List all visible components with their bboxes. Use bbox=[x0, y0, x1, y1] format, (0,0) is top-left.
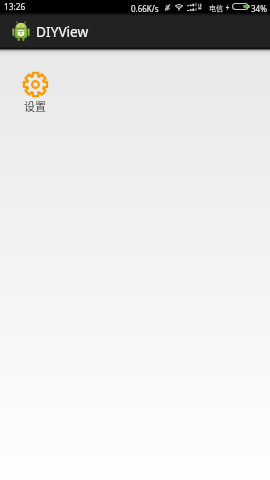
other: App icon bbox=[12, 21, 30, 41]
staticText: 13:26 bbox=[4, 1, 26, 12]
staticText: DIYView bbox=[36, 22, 89, 41]
button[interactable]: 设置 bbox=[8, 47, 62, 122]
staticText: 电信 bbox=[209, 3, 223, 13]
staticText: 34% bbox=[251, 3, 267, 14]
other: 设置 bbox=[22, 71, 49, 98]
staticText: 设置 bbox=[24, 98, 46, 114]
staticText: 0.66K/s bbox=[131, 3, 159, 14]
